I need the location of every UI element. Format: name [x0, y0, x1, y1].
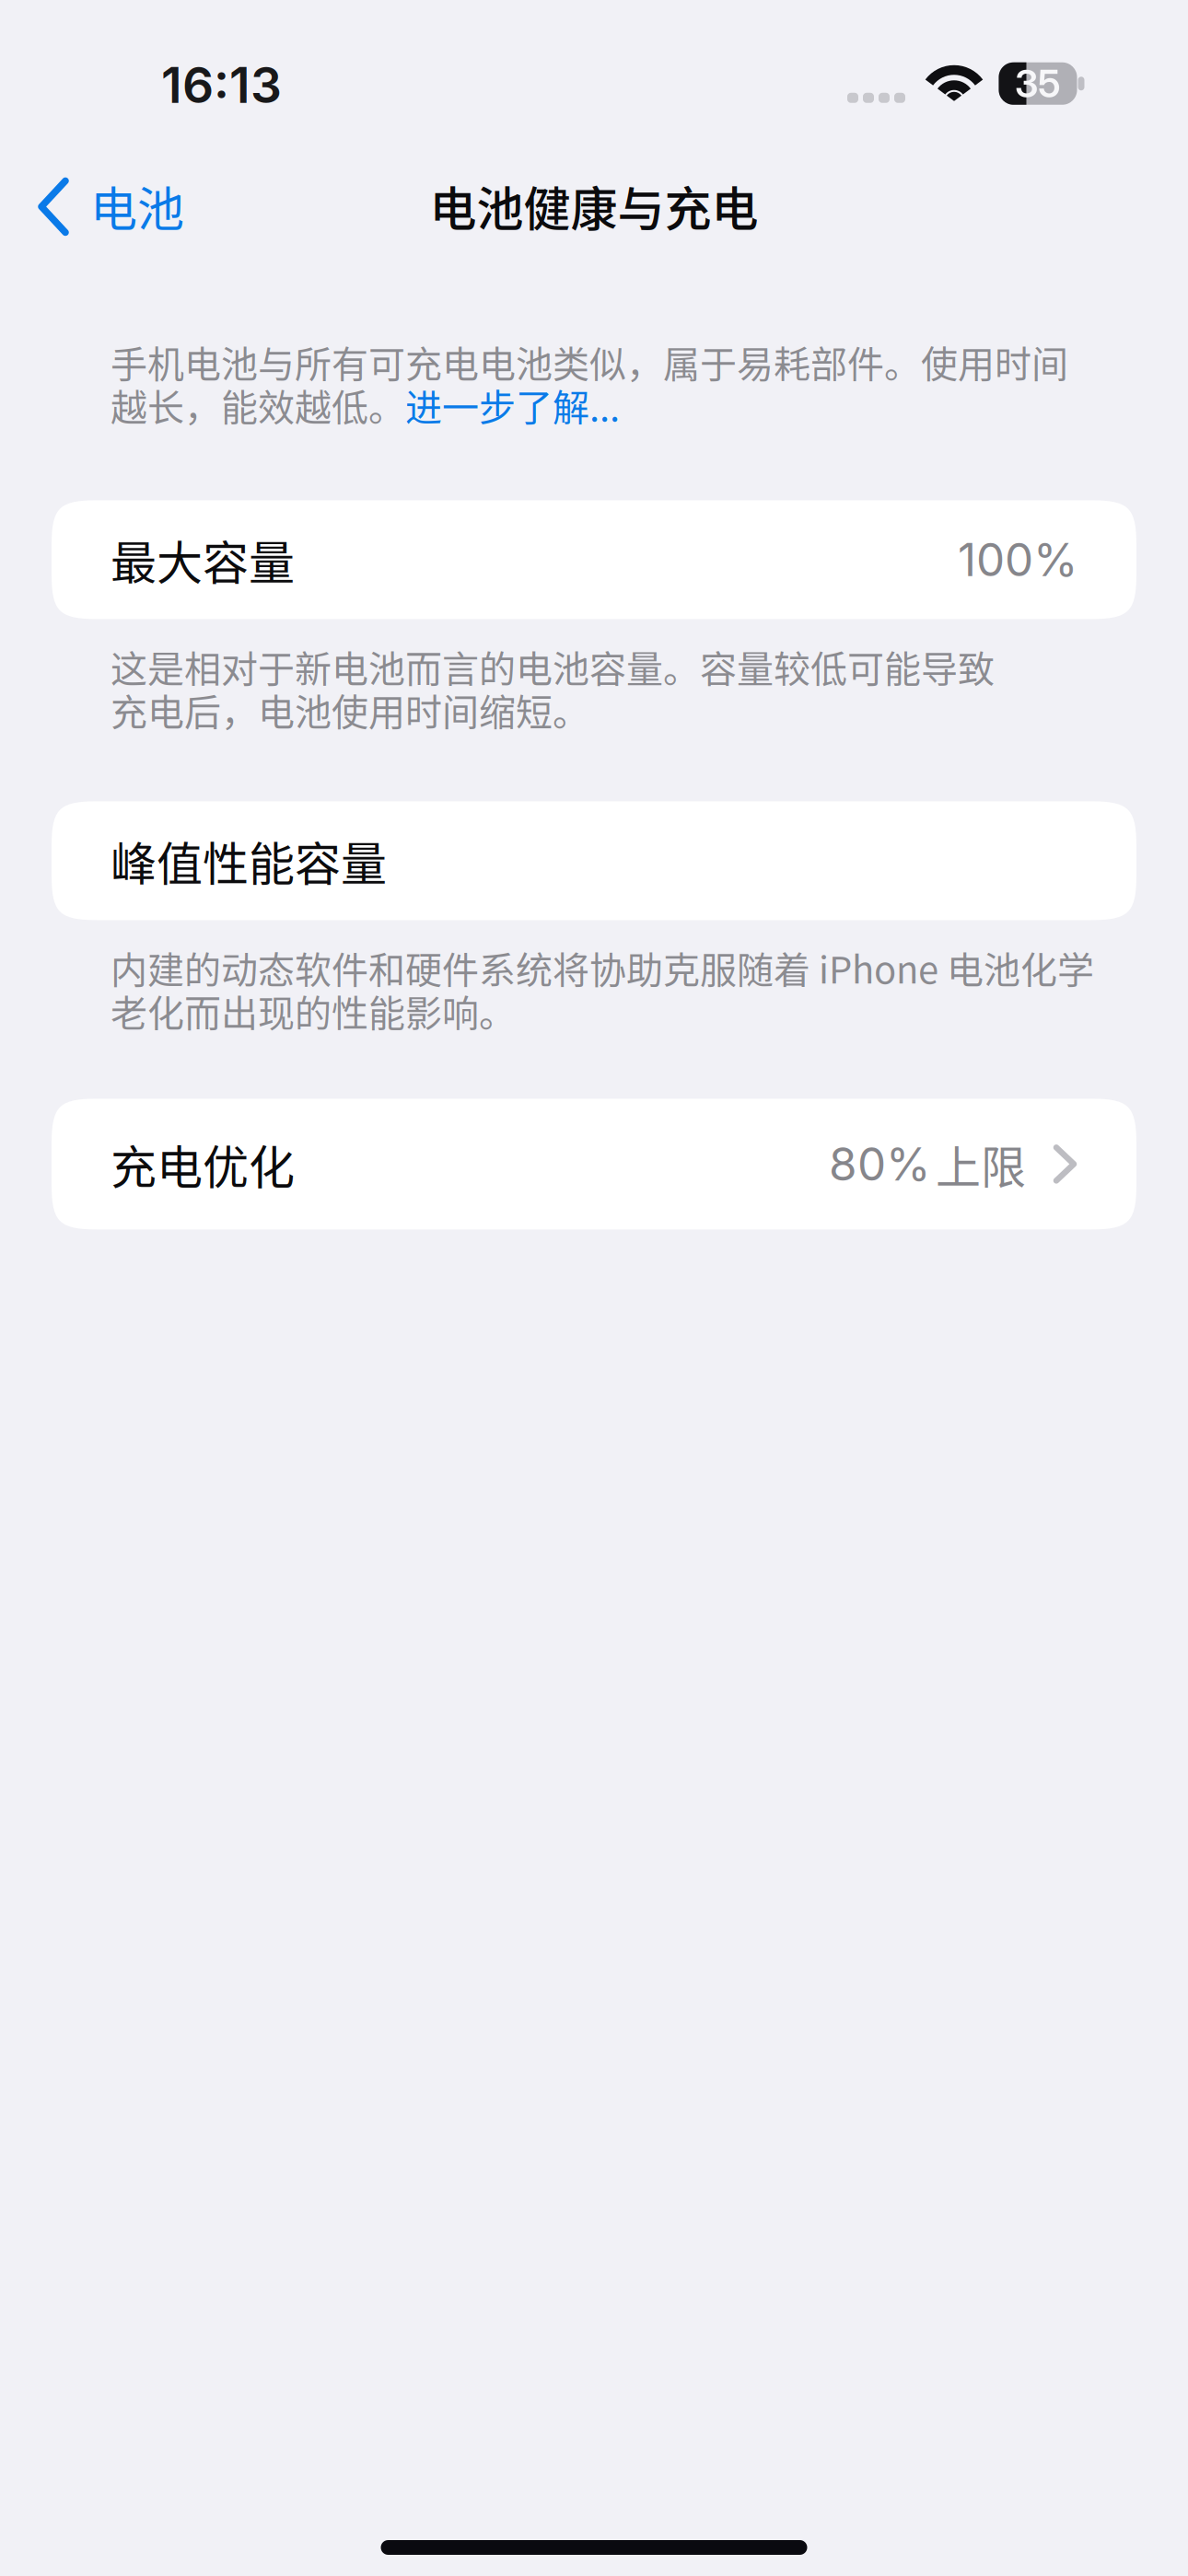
staticText: 内建的动态软件和硬件系统将协助克服随着 iPhone 电池化学	[111, 941, 1094, 994]
staticText: 电池健康与充电	[430, 172, 758, 240]
staticText: 这是相对于新电池而言的电池容量。容量较低可能导致	[111, 640, 995, 693]
staticText: 电池	[90, 172, 184, 240]
staticText: 老化而出现的性能影响。	[111, 984, 516, 1037]
button[interactable]: 进一步了解...	[405, 378, 620, 432]
staticText: 16:13	[161, 55, 282, 115]
staticText: 手机电池与所有可充电电池类似，属于易耗部件。使用时间	[111, 335, 1068, 388]
staticText: 最大容量	[111, 526, 295, 593]
button[interactable]: 最大容量	[52, 500, 1136, 619]
staticText: 进一步了解...	[405, 378, 620, 432]
staticText: 峰值性能容量	[111, 827, 387, 894]
staticText: 100%	[958, 532, 1077, 587]
staticText: 越长，能效越低。	[111, 378, 405, 432]
button[interactable]: 电池	[0, 162, 184, 249]
staticText: 充电后，电池使用时间缩短。	[111, 683, 589, 736]
staticText: 80%	[829, 1137, 930, 1192]
staticText: 上限	[936, 1131, 1026, 1197]
button[interactable]: 充电优化	[52, 1099, 1136, 1229]
staticText: 35	[1015, 61, 1061, 107]
staticText: 充电优化	[111, 1131, 295, 1197]
button[interactable]: 峰值性能容量	[52, 801, 1136, 920]
